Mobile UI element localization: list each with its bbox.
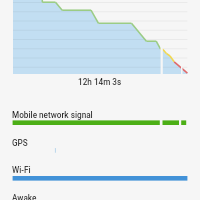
button[interactable] (0, 104, 200, 132)
staticText: GPS (12, 138, 28, 148)
staticText: Wi-Fi (12, 165, 31, 175)
button[interactable] (0, 159, 200, 187)
staticText: Awake (12, 193, 37, 200)
staticText: Mobile network signal (12, 110, 93, 120)
button[interactable] (0, 187, 200, 200)
staticText: 12h 14m 3s (78, 77, 122, 87)
button[interactable] (0, 132, 200, 160)
